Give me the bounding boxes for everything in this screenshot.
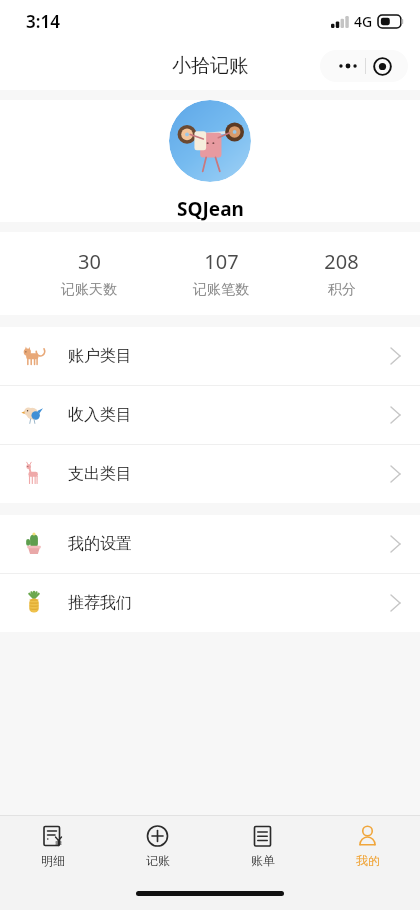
button[interactable]: 208 — [310, 246, 373, 301]
staticText: 记账天数 — [61, 281, 117, 299]
button[interactable]: More options — [320, 50, 408, 82]
button[interactable]: 推荐我们 — [0, 574, 420, 632]
staticText: 4G — [354, 12, 373, 31]
staticText: SQJean — [177, 196, 244, 222]
staticText: 小拾记账 — [172, 54, 248, 78]
button[interactable]: 账户类目 — [0, 327, 420, 386]
staticText: 3:14 — [26, 10, 60, 33]
button[interactable]: Avatar — [169, 100, 251, 182]
staticText: 明细 — [41, 853, 65, 868]
staticText: 积分 — [328, 281, 356, 299]
staticText: 记账 — [146, 853, 170, 868]
staticText: 收入类目 — [68, 405, 132, 425]
button[interactable]: 明细 — [0, 816, 105, 876]
staticText: 账单 — [251, 853, 275, 868]
button[interactable]: 记账 — [105, 816, 210, 876]
button[interactable]: 30 — [47, 246, 131, 301]
button[interactable]: 支出类目 — [0, 445, 420, 503]
staticText: 推荐我们 — [68, 593, 132, 613]
staticText: 208 — [324, 248, 359, 275]
button[interactable]: 我的设置 — [0, 515, 420, 574]
staticText: 支出类目 — [68, 464, 132, 484]
staticText: 我的 — [356, 853, 380, 868]
staticText: 107 — [204, 248, 239, 275]
button[interactable]: 我的 — [315, 816, 420, 876]
staticText: 我的设置 — [68, 534, 132, 554]
staticText: 记账笔数 — [193, 281, 249, 299]
staticText: 账户类目 — [68, 346, 132, 366]
button[interactable]: 107 — [179, 246, 263, 301]
button[interactable]: 收入类目 — [0, 386, 420, 445]
button[interactable]: 账单 — [210, 816, 315, 876]
staticText: 30 — [78, 248, 101, 275]
